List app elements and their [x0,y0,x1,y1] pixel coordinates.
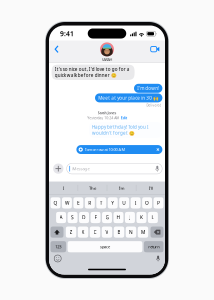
button[interactable]: A [56,212,66,223]
button[interactable]: K [136,212,146,223]
staticText: H [116,214,120,221]
button[interactable]: G [102,212,112,223]
staticText: G [105,214,108,221]
staticText: 123 [55,244,61,249]
staticText: M [141,229,145,235]
staticText: I [63,185,64,191]
button[interactable]: Y [108,197,118,208]
staticText: N [129,229,133,235]
staticText: R [88,200,91,206]
button[interactable]: F [90,212,100,223]
staticText: 9:41 [60,29,74,38]
staticText: S [71,214,74,221]
staticText: W [65,200,69,206]
staticText: Z [69,229,72,235]
staticText: Q [53,200,57,206]
staticText: I'm [118,185,124,191]
button[interactable]: J [125,212,135,223]
staticText: F [94,214,96,221]
button[interactable]: U [119,197,129,208]
staticText: U [122,200,126,206]
staticText: Happy birthday! Told you I wouldn't forg… [92,124,149,136]
button[interactable]: Add attachment [53,164,63,174]
staticText: I'll [149,185,153,191]
staticText: space [100,244,110,249]
staticText: Tomorrow at 10:00 AM [85,147,126,152]
button[interactable]: T [96,197,106,208]
button[interactable]: I [131,197,141,208]
staticText: V [105,229,108,235]
staticText: It's so nice out, I'd love to go for a q… [55,66,130,78]
button[interactable]: L [148,212,158,223]
staticText: Delivered [146,103,161,107]
button[interactable]: Z [66,226,76,238]
button[interactable]: O [142,197,152,208]
staticText: L [151,214,154,221]
button[interactable]: Tomorrow at 10:00 AM [76,145,162,154]
button[interactable]: Dictate [156,255,160,262]
button[interactable]: C [90,226,100,238]
button[interactable]: I [49,181,78,194]
staticText: iMessage [71,166,89,171]
staticText: D [82,214,86,221]
button[interactable]: space [68,241,142,252]
button[interactable]: E [73,197,83,208]
staticText: The [89,185,96,191]
staticText: return [148,244,159,249]
button[interactable]: M [138,226,148,238]
button[interactable]: X [78,226,88,238]
staticText: C [93,229,96,235]
staticText: Yesterday 10:24 AM [87,116,119,120]
button[interactable]: Emoji keyboard [54,255,61,262]
staticText: Edit [121,116,127,120]
staticText: K [140,214,143,221]
button[interactable]: I'll [136,181,165,194]
button[interactable]: N [126,226,136,238]
staticText: O [145,200,149,206]
button[interactable]: I'm [107,181,136,194]
staticText: T [100,200,103,206]
staticText: Sarah Jones [97,110,116,115]
button[interactable]: FaceTime [147,42,163,56]
button[interactable]: return [144,241,163,252]
button[interactable]: V [102,226,112,238]
staticText: Y [111,200,114,206]
staticText: I [135,200,137,206]
staticText: SARAH [101,57,112,62]
button[interactable]: Shift [50,226,63,238]
button[interactable]: P [154,197,163,208]
button[interactable]: B [114,226,124,238]
button[interactable]: Q [50,197,60,208]
staticText: I'm down! [137,85,159,91]
staticText: Meet at your place in 30 🙌 [98,95,159,101]
button[interactable]: Delete [150,226,163,238]
button[interactable]: D [79,212,89,223]
staticText: E [77,200,80,206]
staticText: X [81,229,84,235]
button[interactable]: S [68,212,78,223]
button[interactable]: H [113,212,123,223]
button[interactable]: R [85,197,95,208]
button[interactable]: 123 [50,241,66,252]
staticText: A [60,214,63,221]
button[interactable]: Back [51,41,62,57]
button[interactable]: W [62,197,72,208]
staticText: P [157,200,160,206]
staticText: B [117,229,120,235]
button[interactable]: SARAH [100,42,114,62]
button[interactable]: The [78,181,107,194]
